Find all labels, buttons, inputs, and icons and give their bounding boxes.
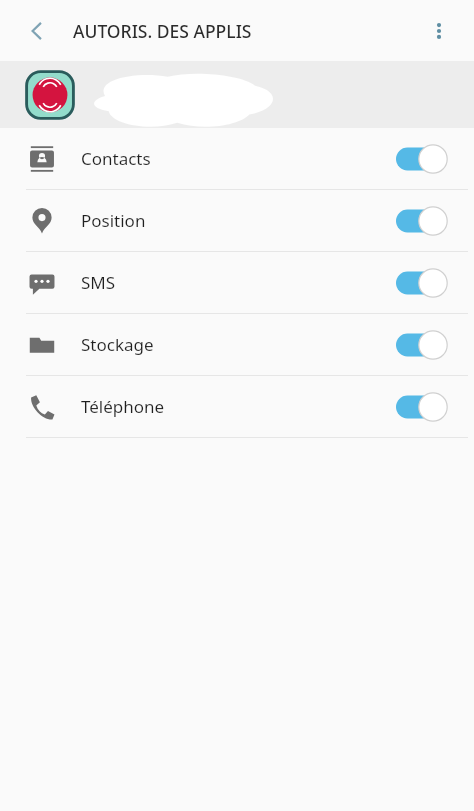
button[interactable]: Permission toggle, on	[396, 392, 448, 422]
button[interactable]: Permission toggle, on	[396, 268, 448, 298]
staticText: AUTORIS. DES APPLIS	[73, 19, 252, 43]
button[interactable]: Contacts	[0, 128, 474, 189]
button[interactable]: Position	[0, 190, 474, 251]
staticText: Téléphone	[81, 395, 165, 418]
button[interactable]: Application icon	[24, 69, 76, 121]
staticText: SMS	[81, 271, 116, 294]
button[interactable]: Téléphone	[0, 376, 474, 437]
button[interactable]: More options	[419, 11, 459, 51]
button[interactable]: Permission toggle, on	[396, 144, 448, 174]
staticText: Position	[81, 209, 146, 232]
button[interactable]: Permission toggle, on	[396, 330, 448, 360]
button[interactable]: Permission toggle, on	[396, 206, 448, 236]
button[interactable]: Stockage	[0, 314, 474, 375]
button[interactable]: SMS	[0, 252, 474, 313]
staticText: Contacts	[81, 147, 151, 170]
button[interactable]: Back	[19, 13, 55, 49]
staticText: Stockage	[81, 333, 154, 356]
